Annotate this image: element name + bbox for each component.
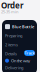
staticText: 25-35 min	[1, 9, 18, 14]
staticText: Track	[24, 50, 34, 56]
staticText: Blue Bottle	[12, 24, 34, 29]
staticText: Preparing	[5, 33, 22, 38]
staticText: Delivering	[5, 65, 23, 70]
staticText: On the way	[11, 58, 30, 63]
staticText: 2 items	[5, 42, 18, 47]
staticText: Details	[5, 51, 17, 56]
staticText: Order	[1, 0, 24, 11]
